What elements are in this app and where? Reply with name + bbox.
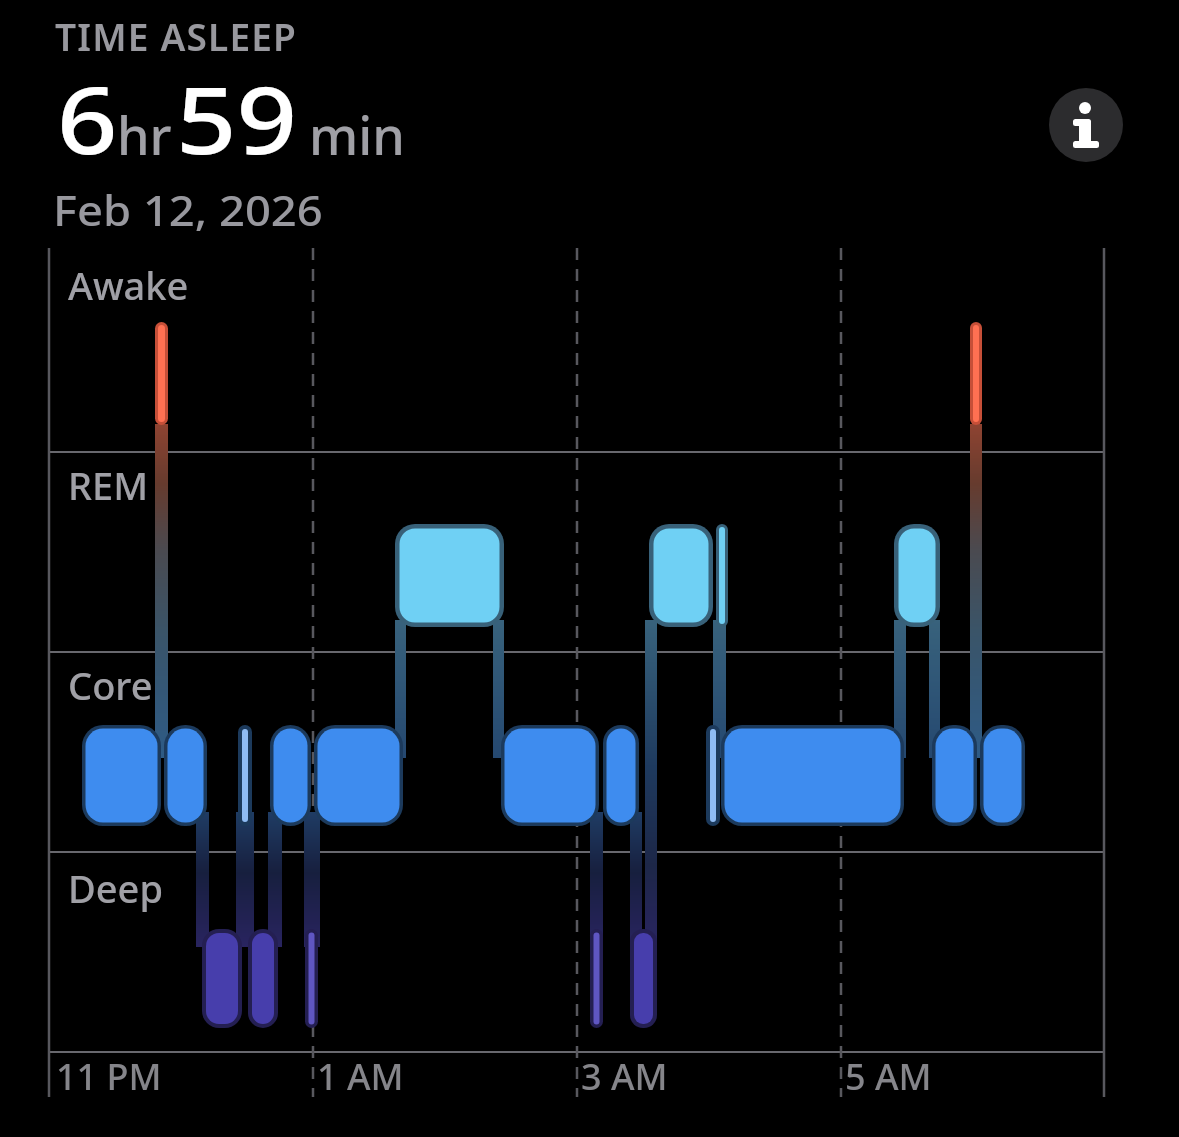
button[interactable] [1049, 88, 1123, 162]
staticText: 59 [176, 56, 298, 181]
staticText: Core [68, 659, 153, 711]
staticText: 1 AM [317, 1052, 404, 1101]
staticText: TIME ASLEEP [55, 11, 298, 61]
staticText: Feb 12, 2026 [53, 181, 323, 238]
staticText: 6 [57, 56, 118, 181]
staticText: REM [68, 459, 149, 511]
staticText: Awake [68, 259, 189, 311]
staticText: Deep [68, 862, 163, 914]
staticText: min [309, 99, 405, 170]
staticText: hr [117, 99, 172, 170]
staticText: 3 AM [581, 1052, 668, 1101]
staticText: 11 PM [56, 1052, 162, 1101]
staticText: 5 AM [845, 1052, 932, 1101]
